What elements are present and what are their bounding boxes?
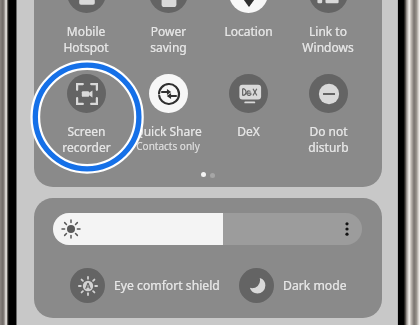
staticText: Contacts only — [136, 139, 200, 153]
button[interactable]: Dark mode — [239, 268, 347, 303]
staticText: Dark mode — [283, 277, 347, 294]
button[interactable]: Eye comfort shield — [70, 268, 220, 303]
button[interactable]: Mobile Hotspot — [46, 0, 126, 66]
staticText: Mobile Hotspot — [63, 23, 109, 56]
button[interactable]: Location — [208, 0, 288, 66]
button[interactable]: Link to Windows — [288, 0, 368, 66]
staticText: Link to Windows — [302, 23, 354, 56]
button[interactable]: Do not disturb — [288, 74, 368, 166]
button[interactable]: Quick Share — [128, 74, 208, 166]
button[interactable]: Screen recorder — [46, 74, 126, 166]
staticText: Do not disturb — [308, 123, 349, 156]
staticText: Eye comfort shield — [114, 277, 220, 294]
staticText: Location — [224, 23, 273, 39]
button[interactable]: More brightness options — [340, 222, 354, 236]
staticText: Screen recorder — [62, 123, 111, 156]
staticText: Power saving — [150, 23, 187, 56]
button[interactable]: DeX — [208, 74, 288, 166]
button[interactable]: More brightness options — [53, 213, 362, 245]
button[interactable]: Power saving — [128, 0, 208, 66]
staticText: DeX — [237, 123, 260, 139]
staticText: Quick Share — [134, 123, 202, 139]
